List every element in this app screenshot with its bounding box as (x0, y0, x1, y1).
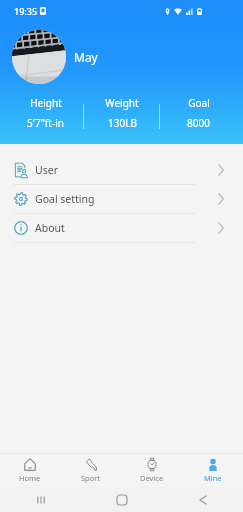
button[interactable]: User (0, 156, 243, 184)
staticText: 19:35 (14, 5, 38, 17)
staticText: Device (140, 473, 164, 483)
button[interactable]: About (0, 214, 243, 242)
button[interactable]: Mine (182, 454, 243, 487)
staticText: User (35, 163, 58, 177)
staticText: 5'7"ft-in (27, 116, 64, 130)
button[interactable]: Recents (0, 487, 81, 512)
staticText: Goal setting (35, 192, 95, 206)
button[interactable]: Goal setting (0, 185, 243, 213)
staticText: Home (19, 473, 41, 483)
button[interactable]: Home (81, 487, 162, 512)
staticText: Mine (204, 473, 222, 483)
staticText: Weight (105, 96, 139, 110)
button[interactable]: Home (0, 454, 60, 487)
staticText: Goal (188, 96, 210, 110)
button[interactable]: Back (162, 487, 243, 512)
staticText: About (35, 221, 65, 235)
staticText: May (74, 49, 98, 65)
button[interactable]: Device (121, 454, 182, 487)
staticText: 8000 (187, 116, 210, 130)
staticText: Sport (81, 473, 101, 483)
staticText: 130LB (108, 116, 137, 130)
button[interactable]: Sport (60, 454, 121, 487)
staticText: Height (30, 96, 62, 110)
